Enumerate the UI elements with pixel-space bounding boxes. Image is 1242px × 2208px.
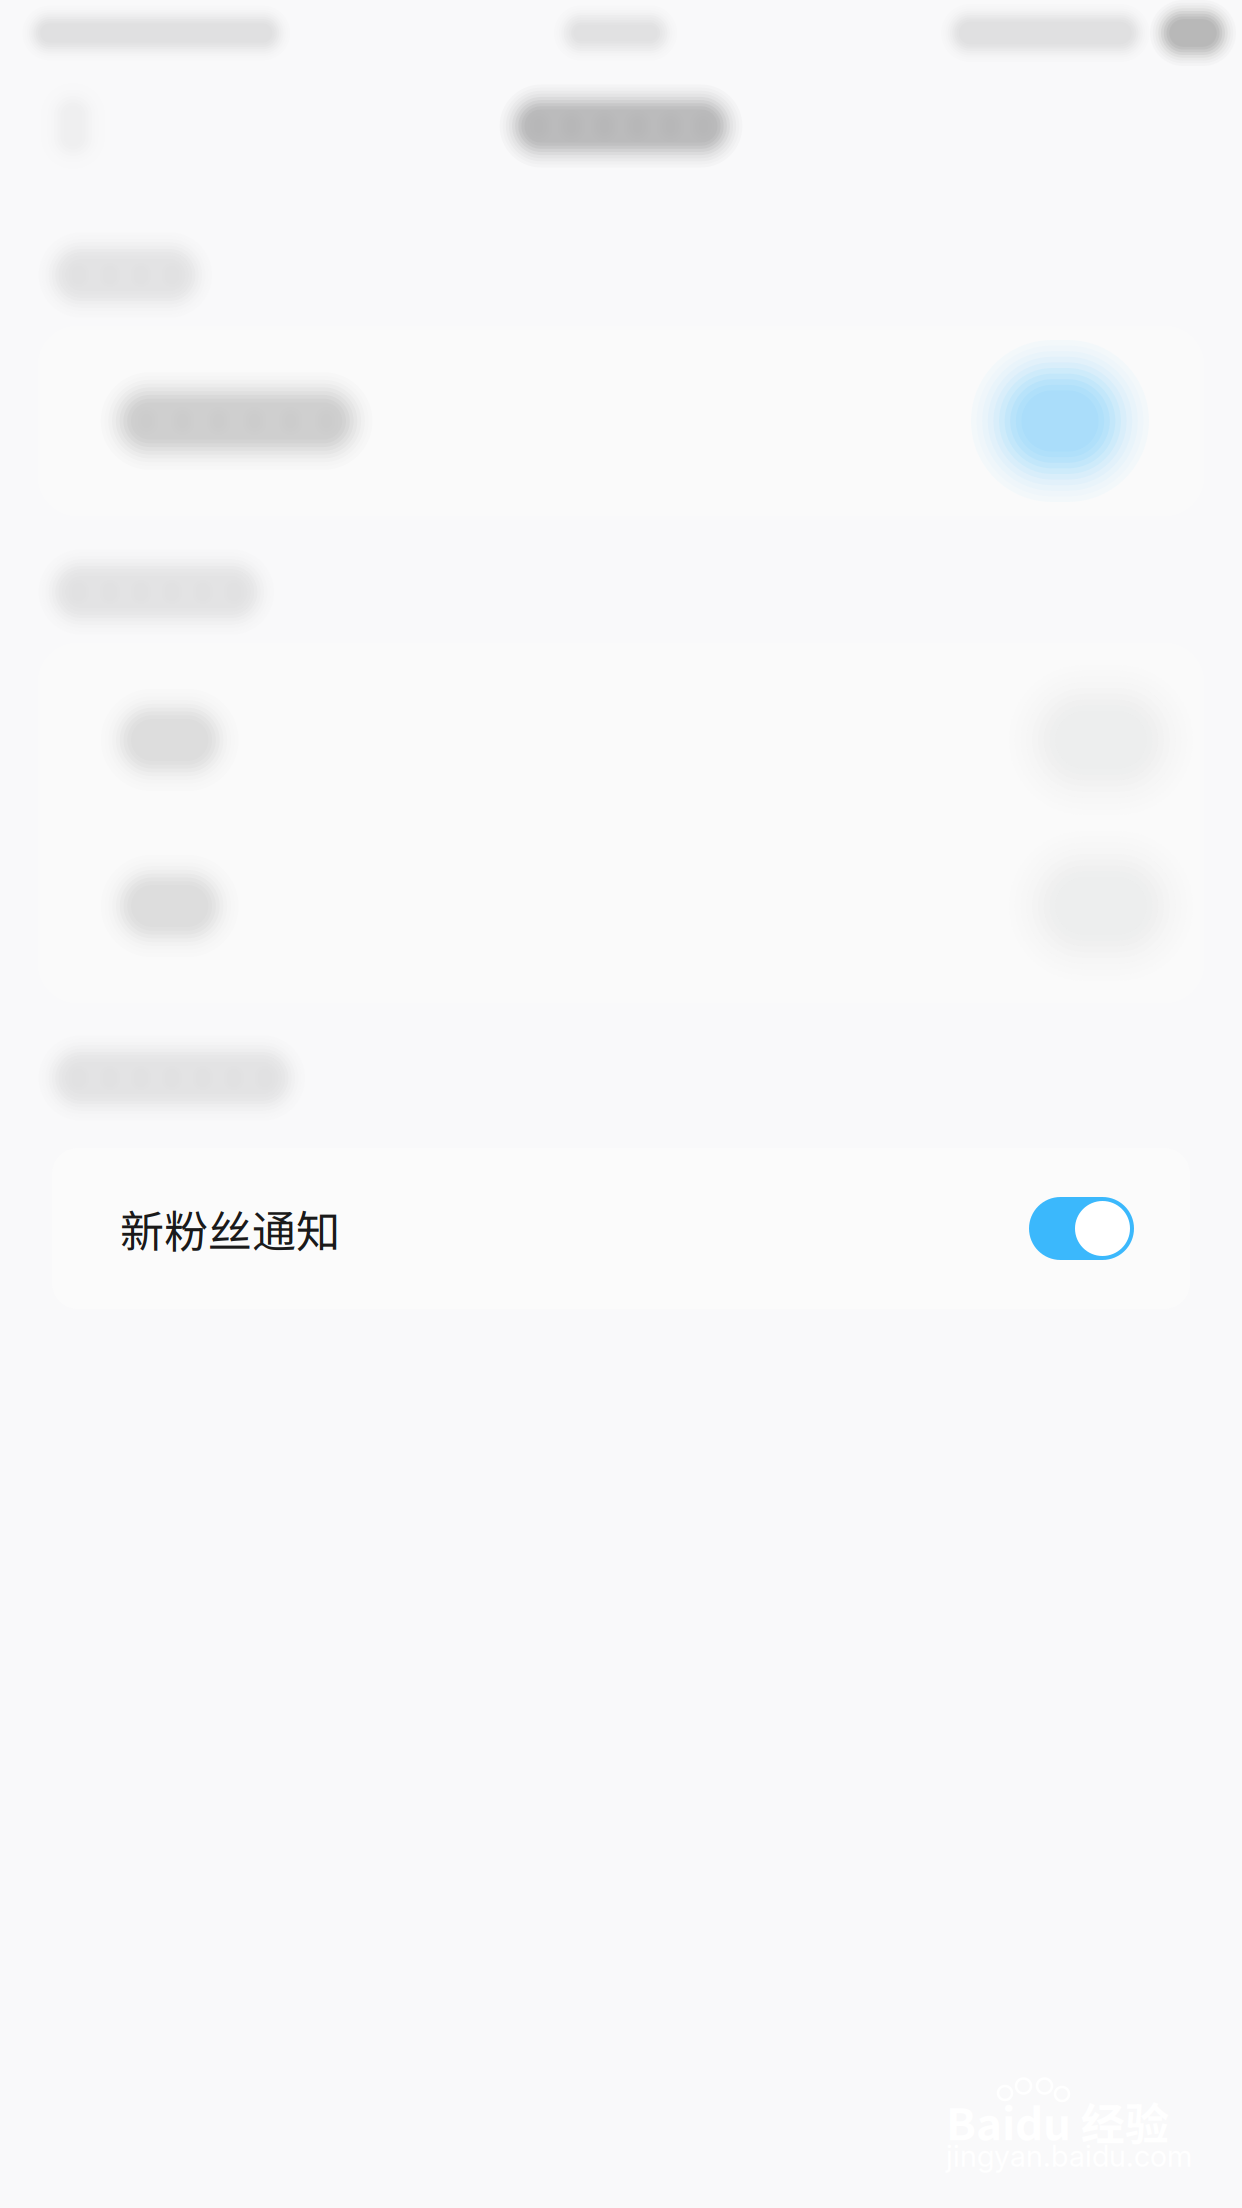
button[interactable]: On [52, 1148, 1190, 1309]
staticText: 新粉丝通知 [120, 1197, 340, 1260]
button[interactable]: Off [52, 823, 1190, 989]
button[interactable]: Off [52, 657, 1190, 823]
button[interactable]: On [52, 340, 1190, 502]
